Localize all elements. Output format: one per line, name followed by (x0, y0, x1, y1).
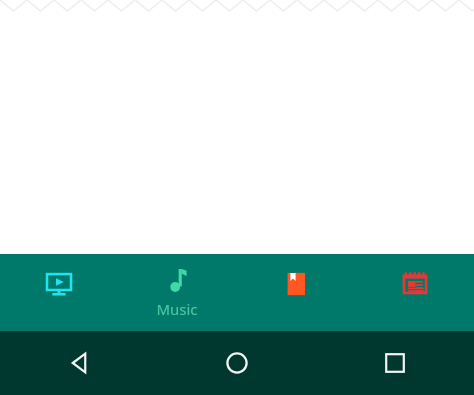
button[interactable]: Recent apps (316, 331, 474, 395)
button[interactable]: Back (0, 331, 158, 395)
button[interactable]: Movies & TV (0, 254, 118, 331)
button[interactable]: Home (158, 331, 316, 395)
button[interactable]: Music (118, 254, 236, 331)
button[interactable]: Newsstand (355, 254, 474, 331)
button[interactable]: Books (236, 254, 355, 331)
staticText: Music (156, 299, 198, 319)
